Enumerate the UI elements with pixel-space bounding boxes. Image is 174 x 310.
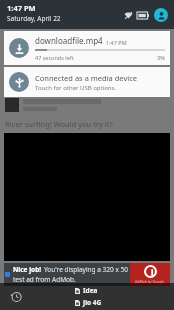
staticText: test ad from AdMob.	[13, 275, 76, 284]
staticText: You're displaying a 320 x 50	[44, 265, 129, 274]
staticText: Idea	[83, 286, 98, 295]
button[interactable]: Jio 4G	[75, 298, 102, 307]
button[interactable]: downloadfile.mp4	[4, 31, 170, 65]
button[interactable]: Idea	[75, 286, 98, 295]
staticText: River surfing! Would you try it?	[5, 119, 113, 129]
button[interactable]: Recent call	[8, 289, 23, 304]
staticText: 47 seconds left	[35, 54, 74, 61]
staticText: Touch for other USB options.	[35, 84, 117, 92]
staticText: 1:47 PM	[7, 3, 36, 13]
staticText: 1:47 PM	[106, 39, 127, 46]
button[interactable]: User profile	[154, 8, 168, 22]
staticText: Jio 4G	[83, 298, 102, 307]
button[interactable]: Connected as a media device	[4, 67, 170, 97]
staticText: AdMob by Google	[135, 279, 165, 284]
staticText: Connected as a media device	[35, 73, 137, 83]
staticText: 3%	[157, 54, 165, 61]
staticText: downloadfile.mp4	[35, 35, 103, 46]
staticText: Saturday, April 22	[7, 14, 61, 23]
staticText: Nice job!	[13, 265, 42, 274]
button[interactable]: Nice job!	[4, 263, 170, 286]
